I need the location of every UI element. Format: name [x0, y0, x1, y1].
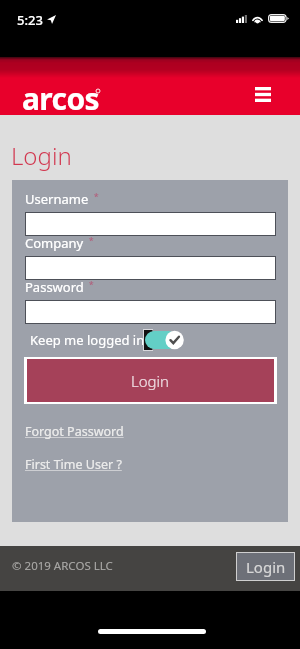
- staticText: arcos: [22, 78, 100, 119]
- staticText: Username: [25, 190, 89, 208]
- staticText: Login: [131, 371, 169, 391]
- button[interactable]: Forgot Password: [25, 423, 124, 440]
- button[interactable]: Menu: [246, 77, 280, 111]
- staticText: *: [89, 190, 99, 202]
- staticText: Login: [246, 557, 286, 577]
- staticText: *: [84, 234, 94, 246]
- button[interactable]: Login: [27, 359, 274, 402]
- button[interactable]: Keep me logged in: [30, 331, 145, 349]
- staticText: Password: [25, 278, 84, 296]
- button[interactable]: Keep me logged in toggle: [143, 329, 185, 351]
- staticText: 5:23: [17, 11, 43, 29]
- button[interactable]: First Time User ?: [25, 456, 122, 473]
- staticText: Login: [11, 139, 72, 172]
- staticText: © 2019 ARCOS LLC: [12, 558, 113, 574]
- staticText: Company: [25, 234, 84, 252]
- button[interactable]: Login: [237, 553, 294, 580]
- staticText: *: [84, 278, 94, 290]
